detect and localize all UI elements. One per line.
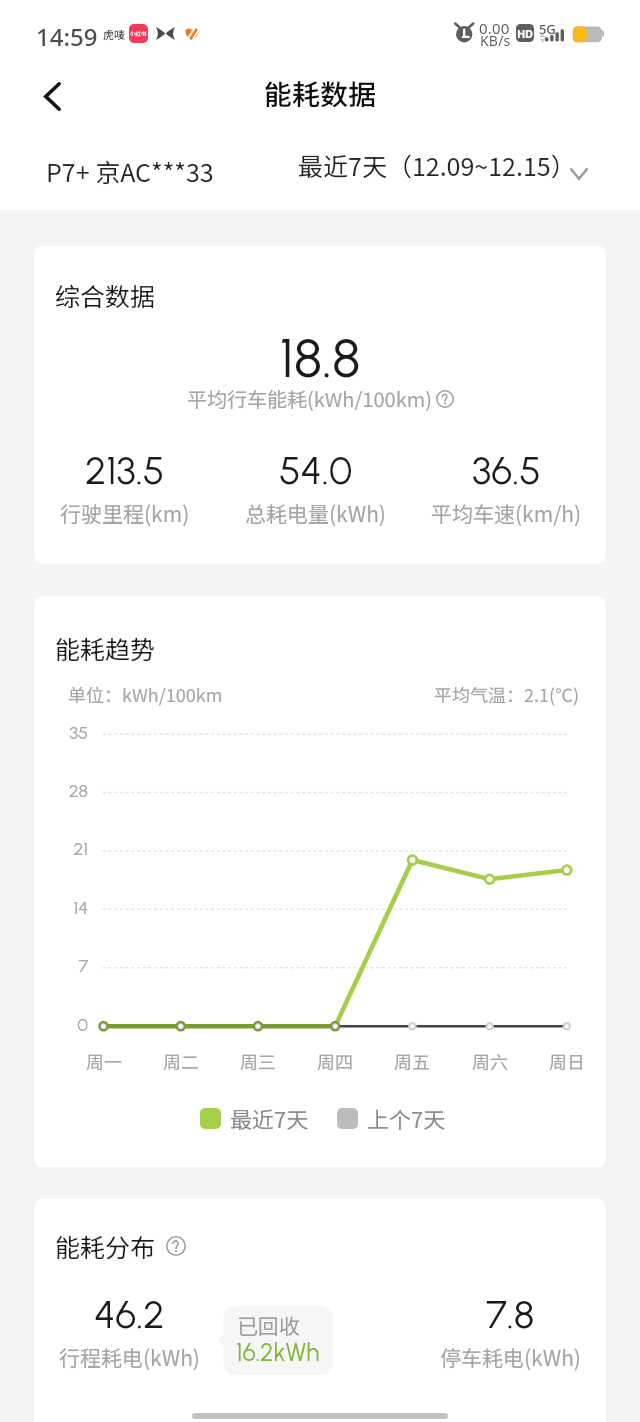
- staticText: 54.0: [279, 447, 353, 494]
- staticText: 平均行车能耗(kWh/100km): [187, 384, 432, 413]
- staticText: 周五: [372, 1048, 452, 1074]
- staticText: 周一: [64, 1048, 144, 1074]
- staticText: 18.8: [34, 326, 606, 391]
- staticText: 能耗趋势: [55, 630, 156, 666]
- staticText: 停车耗电(kWh): [440, 1342, 581, 1372]
- staticText: 行驶里程(km): [60, 498, 190, 528]
- staticText: 0: [48, 1014, 88, 1036]
- staticText: 周日: [527, 1048, 606, 1074]
- staticText: 最近7天（12.09~12.15）: [298, 147, 576, 183]
- staticText: 最近7天: [230, 1102, 309, 1134]
- staticText: 平均气温：2.1(℃): [434, 681, 580, 707]
- staticText: 35: [48, 722, 88, 744]
- staticText: 28: [48, 780, 88, 802]
- staticText: 21: [48, 838, 88, 860]
- staticText: 能耗分布: [55, 1228, 156, 1264]
- staticText: 周六: [450, 1048, 530, 1074]
- staticText: 周二: [141, 1048, 221, 1074]
- staticText: 周三: [218, 1048, 298, 1074]
- staticText: 平均车速(km/h): [431, 498, 582, 528]
- staticText: 0.00: [479, 18, 510, 38]
- staticText: HD: [517, 26, 533, 41]
- staticText: KB/s: [480, 31, 511, 50]
- staticText: 7: [48, 955, 88, 977]
- staticText: 虎唛: [103, 26, 125, 42]
- staticText: 46.2: [94, 1291, 165, 1338]
- button[interactable]: Back: [28, 72, 76, 120]
- staticText: 14: [48, 897, 88, 919]
- staticText: 单位：kWh/100km: [68, 681, 223, 707]
- staticText: 5G: [539, 20, 556, 38]
- staticText: 已回收: [237, 1310, 300, 1340]
- staticText: 上个7天: [367, 1102, 446, 1134]
- staticText: 周四: [295, 1048, 375, 1074]
- staticText: 16.2kWh: [236, 1338, 320, 1367]
- staticText: 总耗电量(kWh): [245, 498, 386, 528]
- button[interactable]: 最近7天（12.09~12.15）: [298, 147, 594, 183]
- staticText: 小红书: [130, 30, 147, 38]
- staticText: 36.5: [472, 447, 541, 494]
- staticText: 7.8: [486, 1291, 535, 1338]
- staticText: 213.5: [85, 447, 165, 494]
- staticText: 行程耗电(kWh): [59, 1342, 200, 1372]
- staticText: 综合数据: [55, 277, 156, 313]
- staticText: 能耗数据: [0, 73, 640, 114]
- staticText: P7+ 京AC***33: [46, 153, 214, 189]
- staticText: 14:59: [36, 20, 98, 53]
